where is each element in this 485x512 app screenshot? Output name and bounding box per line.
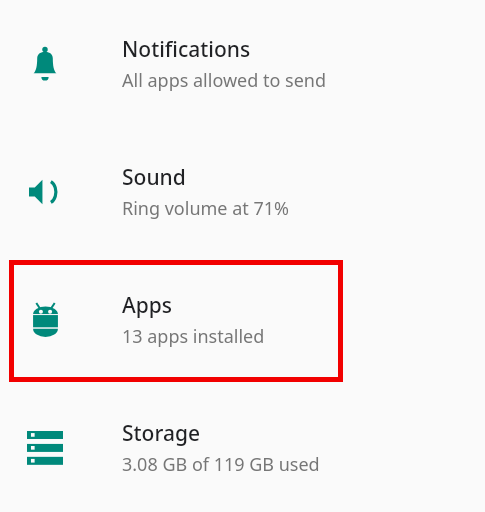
button[interactable]: Storage [0, 384, 485, 512]
staticText: 3.08 GB of 119 GB used [122, 452, 320, 477]
other: Storage [0, 384, 122, 512]
staticText: Ring volume at 71% [122, 196, 290, 221]
staticText: Apps [122, 291, 173, 320]
staticText: Storage [122, 419, 200, 448]
staticText: Sound [122, 163, 186, 192]
other: Notifications [0, 0, 122, 128]
staticText: 13 apps installed [122, 324, 265, 349]
button[interactable]: Sound [0, 128, 485, 256]
other: Apps [0, 256, 122, 384]
button[interactable]: Apps [0, 256, 485, 384]
staticText: All apps allowed to send [122, 68, 327, 93]
other: Sound [0, 128, 122, 256]
button[interactable]: Notifications [0, 0, 485, 128]
staticText: Notifications [122, 35, 251, 64]
